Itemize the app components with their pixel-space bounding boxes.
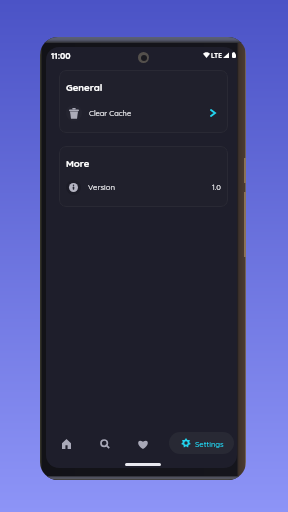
staticText: General (66, 81, 103, 93)
button[interactable]: Home (55, 433, 77, 455)
button[interactable]: Favorites (132, 433, 154, 455)
button[interactable]: Settings (169, 432, 234, 454)
staticText: More (66, 157, 90, 169)
staticText: Clear Cache (89, 108, 132, 117)
button[interactable]: Clear Cache (59, 101, 228, 124)
button[interactable]: Search (94, 433, 116, 455)
staticText: 11:00 (51, 50, 71, 61)
button[interactable]: Version (59, 177, 228, 197)
staticText: Version (88, 182, 115, 192)
staticText: 1.0 (212, 182, 221, 192)
staticText: LTE (211, 51, 222, 59)
staticText: Settings (195, 439, 224, 448)
